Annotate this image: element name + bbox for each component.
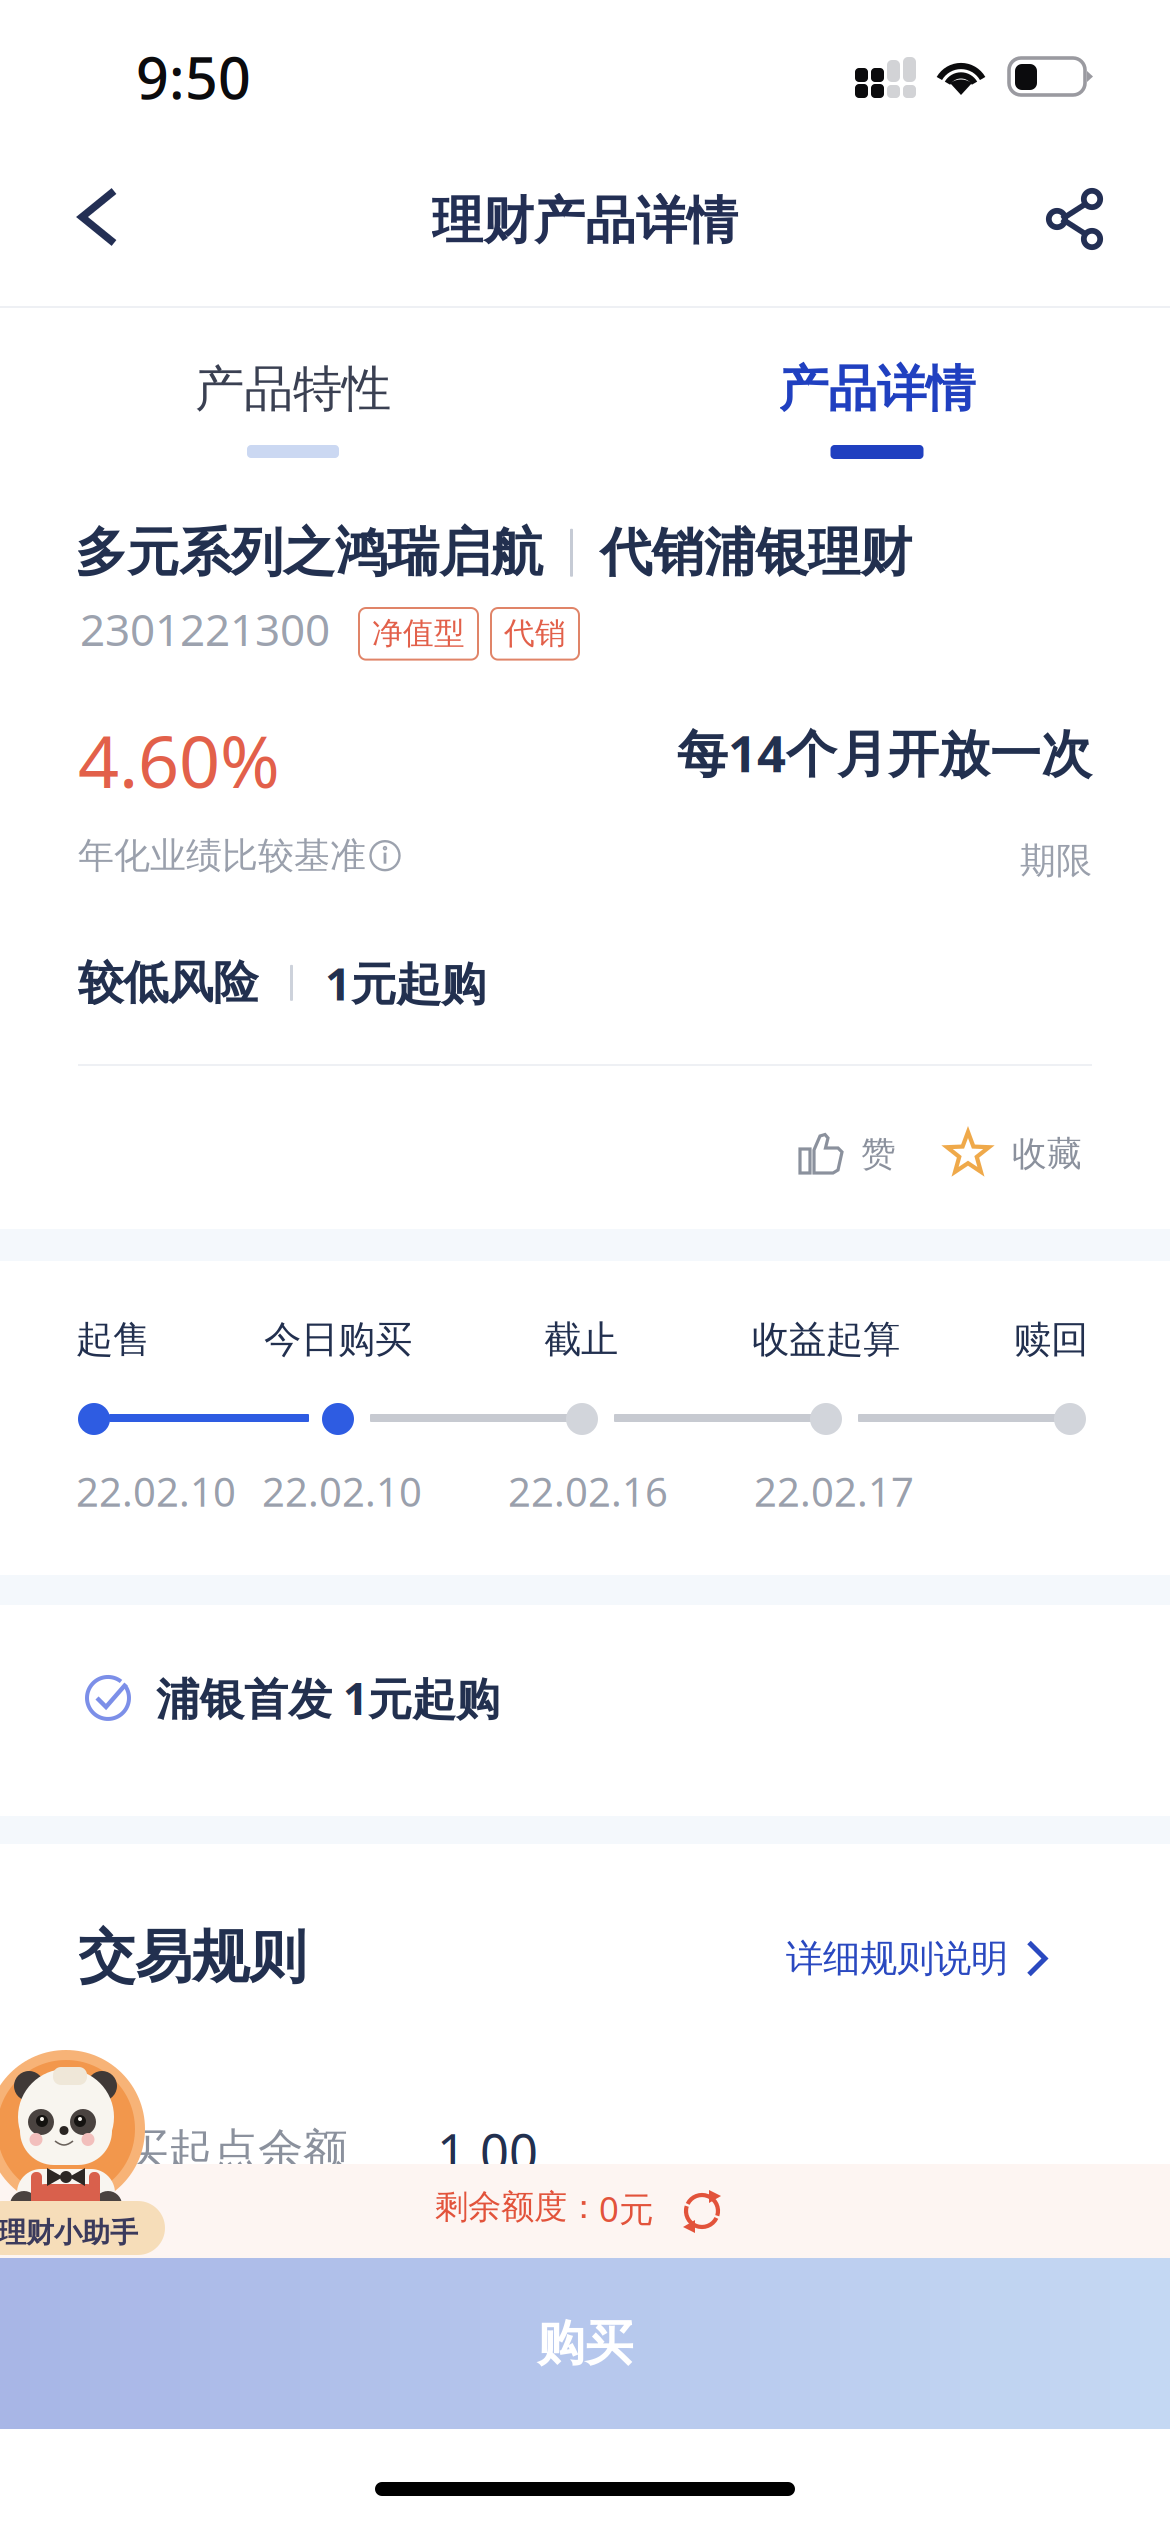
staticText: 22.02.10	[76, 1464, 236, 1518]
staticText: 2301221300	[80, 599, 330, 659]
staticText: 购买	[537, 2313, 633, 2374]
staticText: 多元系列之鸿瑞启航	[75, 520, 543, 585]
staticText: 22.02.10	[262, 1464, 422, 1518]
staticText: 每14个月开放一次	[677, 718, 1092, 787]
staticText: 年化业绩比较基准	[78, 833, 366, 878]
staticText: 起售	[76, 1316, 150, 1363]
button[interactable]: 返回	[43, 161, 155, 273]
staticText: 净值型	[372, 614, 465, 653]
button[interactable]: 详细规则说明	[786, 1925, 1050, 1992]
staticText: 理财产品详情	[432, 189, 738, 253]
staticText: 购买起点余额	[78, 2122, 348, 2179]
staticText: 浦银首发 1元起购	[156, 1668, 500, 1728]
staticText: 剩余额度：	[435, 2186, 600, 2228]
staticText: 赞	[861, 1132, 896, 1176]
staticText: 较低风险	[78, 954, 258, 1011]
staticText: 收益起算	[752, 1316, 900, 1363]
staticText: 1.00	[437, 2117, 538, 2186]
button[interactable]: 赞	[797, 1120, 896, 1188]
staticText: 今日购买	[264, 1316, 412, 1363]
staticText: 赎回	[1014, 1316, 1088, 1363]
staticText: 1元起购	[325, 952, 486, 1014]
staticText: 代销	[504, 614, 566, 653]
staticText: 22.02.16	[508, 1464, 668, 1518]
button[interactable]: 理财小助手	[0, 2041, 180, 2271]
staticText: 产品特性	[195, 358, 391, 420]
button[interactable]: 分享	[1019, 163, 1131, 275]
staticText: 代销浦银理财	[600, 520, 912, 585]
staticText: 收藏	[1012, 1132, 1082, 1176]
staticText: 期限	[1020, 838, 1092, 883]
button[interactable]: 产品特性	[147, 359, 439, 499]
staticText: 交易规则	[78, 1921, 306, 1993]
staticText: 4.60%	[78, 711, 280, 809]
button[interactable]: 购买	[0, 2258, 1170, 2429]
button[interactable]: 产品详情	[731, 359, 1023, 499]
staticText: 0元	[599, 2185, 654, 2232]
staticText: 22.02.17	[754, 1464, 914, 1518]
staticText: 产品详情	[779, 358, 975, 420]
staticText: 9:50	[136, 38, 251, 116]
staticText: 详细规则说明	[786, 1935, 1008, 1982]
staticText: 截止	[544, 1316, 618, 1363]
staticText: 理财小助手	[0, 2215, 138, 2250]
button[interactable]: 收藏	[944, 1120, 1082, 1188]
